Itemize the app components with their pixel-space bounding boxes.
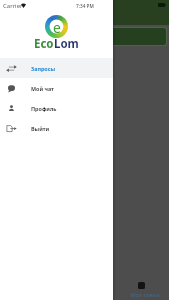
staticText: Eco [34,36,54,52]
button[interactable]: Профиль [0,98,113,118]
staticText: Запросы [31,65,56,72]
staticText: Выйти [31,125,50,132]
button[interactable]: Мои заявки [113,274,169,300]
button[interactable]: Выйти [0,118,113,138]
staticText: Профиль [31,105,57,112]
staticText: Мой чат [31,85,54,92]
button[interactable]: Запросы [0,58,113,78]
button[interactable]: Мой чат [0,78,113,98]
staticText: Lom [54,36,79,52]
staticText: Carrier [3,2,23,10]
staticText: Мои заявки [131,292,160,299]
staticText: 7:34 PM [76,3,94,9]
staticText: e [53,18,61,37]
